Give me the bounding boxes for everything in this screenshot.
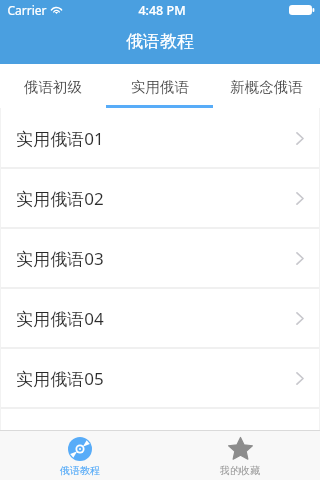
staticText: Carrier [7,2,47,18]
staticText: 实用俄语04 [16,307,104,330]
staticText: 实用俄语05 [16,367,104,390]
button[interactable]: My favourites [160,430,320,480]
button[interactable]: 俄语初级 [0,64,106,108]
staticText: 实用俄语 [131,78,189,96]
button[interactable]: 新概念俄语 [213,64,320,108]
button[interactable]: 实用俄语01 [0,108,320,168]
staticText: 实用俄语03 [16,247,104,270]
staticText: 新概念俄语 [230,78,303,96]
staticText: 我的收藏 [220,464,260,477]
staticText: 实用俄语01 [16,127,104,150]
button[interactable]: 实用俄语04 [0,288,320,348]
button[interactable]: 实用俄语05 [0,348,320,408]
staticText: 俄语教程 [60,464,100,477]
staticText: 俄语教程 [126,31,194,52]
button[interactable]: 实用俄语06 [0,408,320,430]
button[interactable]: 实用俄语02 [0,168,320,228]
button[interactable]: Russian courses [0,430,160,480]
button[interactable]: 实用俄语 [106,64,213,108]
staticText: 4:48 PM [138,2,186,19]
staticText: 实用俄语02 [16,187,104,210]
button[interactable]: 实用俄语03 [0,228,320,288]
staticText: 俄语初级 [24,78,82,96]
